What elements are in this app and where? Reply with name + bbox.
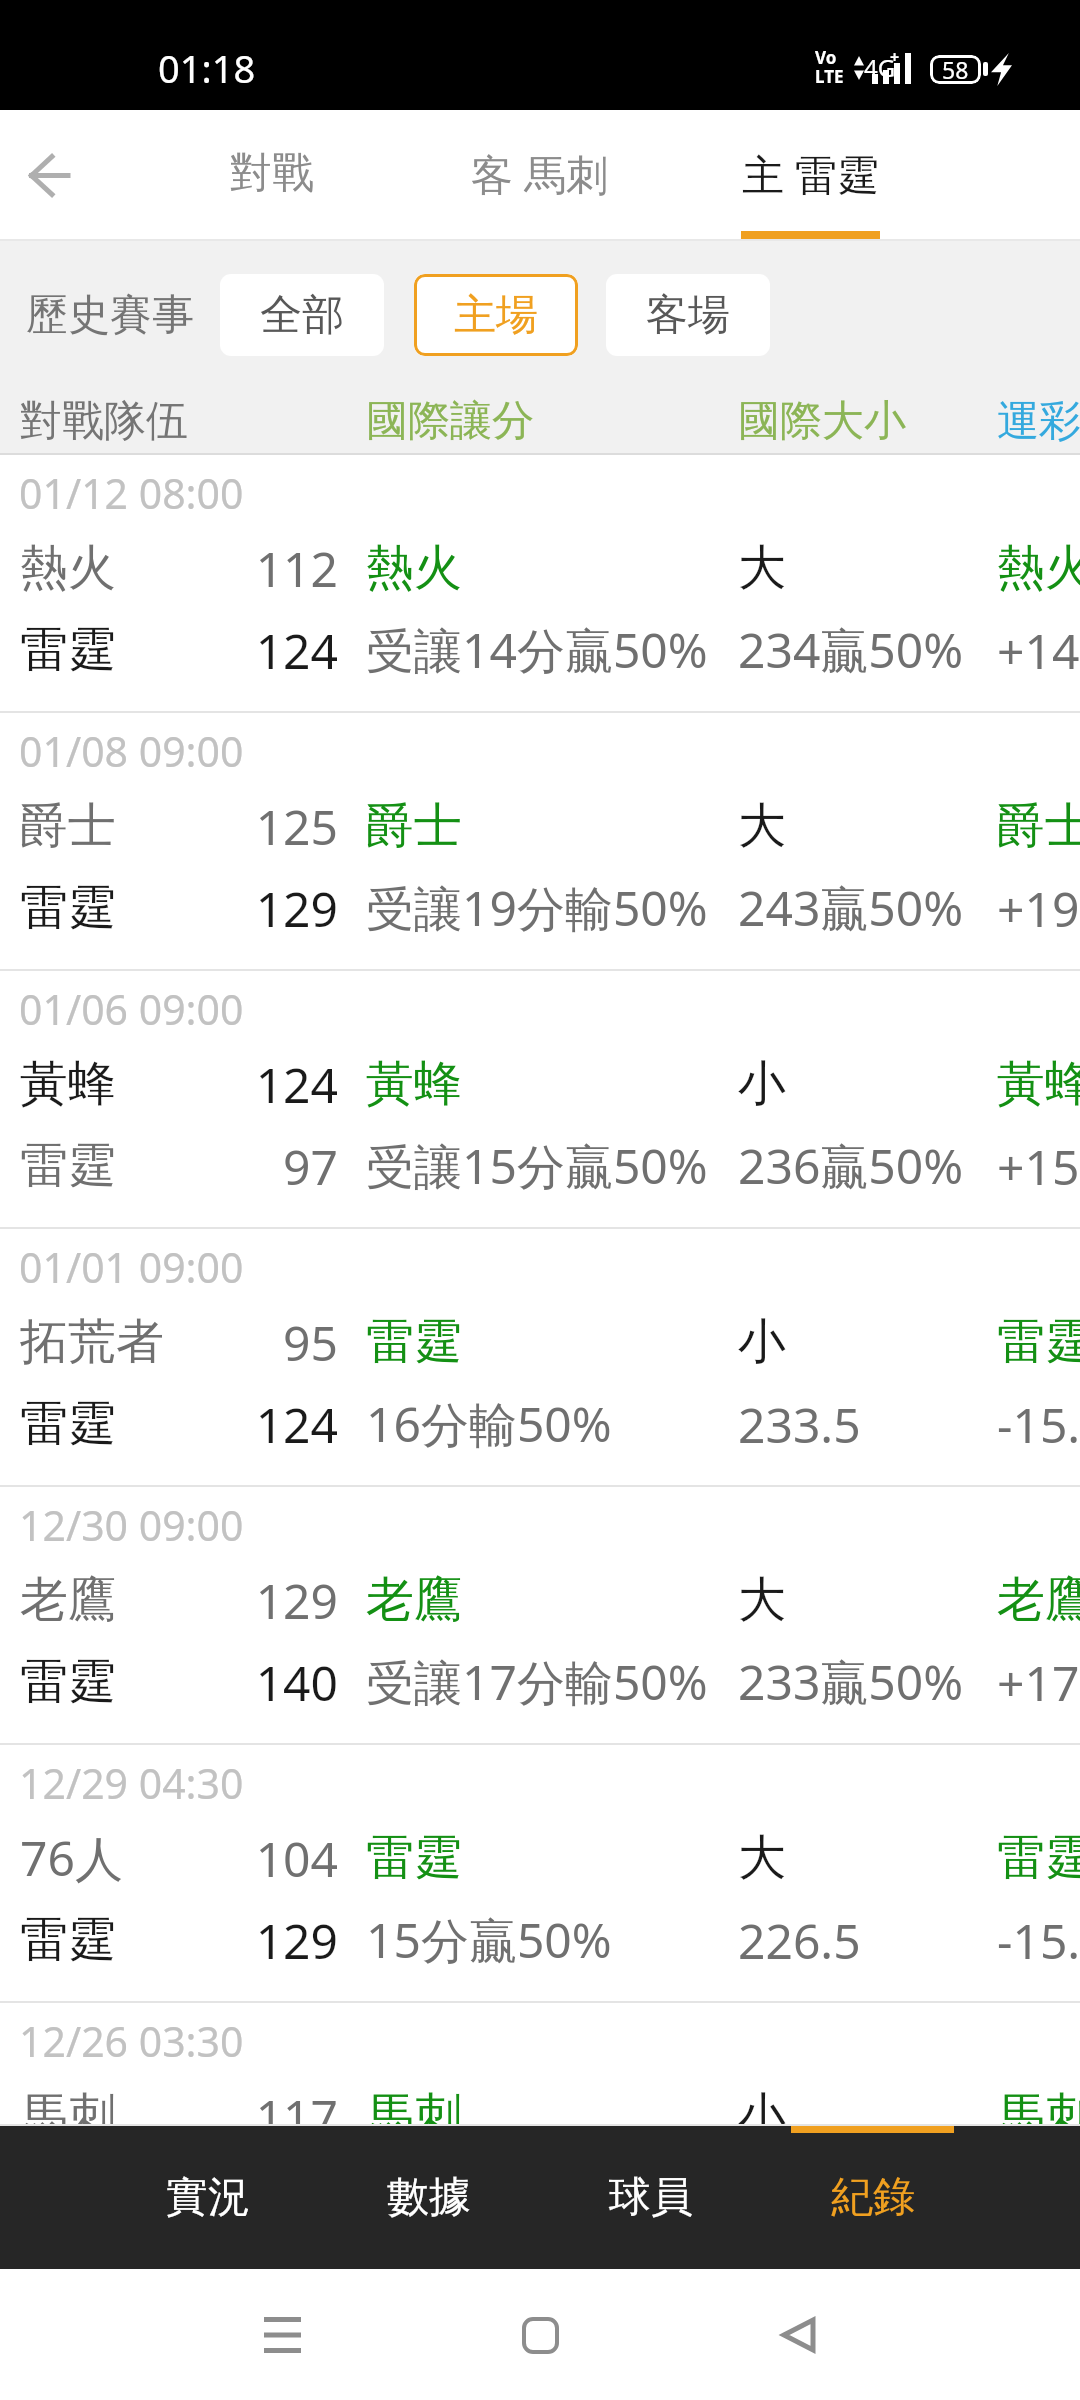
staticText: 雷霆 bbox=[20, 1136, 116, 1196]
staticText: 老鷹 bbox=[366, 1570, 462, 1630]
button[interactable]: 球員 bbox=[540, 2126, 761, 2269]
staticText: +14.5 bbox=[997, 618, 1080, 683]
button[interactable]: 客 馬刺 bbox=[424, 110, 654, 239]
button[interactable]: 01/08 09:00 bbox=[0, 713, 1080, 971]
staticText: 01:18 bbox=[158, 42, 256, 94]
staticText: 熱火 bbox=[997, 538, 1080, 598]
staticText: 大 bbox=[738, 1570, 786, 1630]
button[interactable]: 01/06 09:00 bbox=[0, 971, 1080, 1229]
staticText: 小 bbox=[738, 1312, 786, 1372]
button[interactable]: 主場 bbox=[414, 274, 578, 356]
staticText: 受讓14分贏50% bbox=[366, 617, 708, 683]
staticText: 雷霆 bbox=[20, 620, 116, 680]
staticText: 運彩 bbox=[997, 395, 1080, 448]
staticText: 76人 bbox=[20, 1825, 123, 1891]
staticText: 熱火 bbox=[20, 538, 116, 598]
staticText: 58 bbox=[942, 55, 969, 83]
staticText: 雷霆 bbox=[20, 1394, 116, 1454]
staticText: 104 bbox=[0, 1826, 338, 1891]
staticText: 16分輸50% bbox=[366, 1391, 612, 1457]
staticText: 124 bbox=[0, 1392, 338, 1457]
staticText: 老鷹 bbox=[20, 1570, 116, 1630]
staticText: 客 馬刺 bbox=[471, 145, 608, 202]
staticText: 12/29 04:30 bbox=[19, 1755, 244, 1811]
button[interactable]: Back bbox=[738, 2275, 858, 2395]
button[interactable]: 01/12 08:00 bbox=[0, 455, 1080, 713]
button[interactable]: Back bbox=[1, 127, 97, 223]
button[interactable]: 12/30 09:00 bbox=[0, 1487, 1080, 1745]
staticText: 236贏50% bbox=[738, 1133, 964, 1199]
staticText: 對戰隊伍 bbox=[20, 395, 188, 448]
staticText: 國際大小 bbox=[738, 395, 906, 448]
staticText: 12/30 09:00 bbox=[19, 1497, 244, 1553]
button[interactable]: 紀錄 bbox=[762, 2126, 983, 2269]
staticText: 客場 bbox=[646, 289, 730, 342]
staticText: 雷霆 bbox=[366, 1828, 462, 1888]
staticText: 雷霆 bbox=[20, 1652, 116, 1712]
staticText: +15.5 bbox=[997, 1134, 1080, 1199]
staticText: 球員 bbox=[609, 2171, 693, 2224]
staticText: 馬刺 bbox=[20, 2086, 116, 2126]
staticText: 爵士 bbox=[20, 796, 116, 856]
staticText: 爵士 bbox=[997, 796, 1080, 856]
staticText: 233贏50% bbox=[738, 1649, 964, 1715]
staticText: 雷霆 bbox=[20, 878, 116, 938]
staticText: 243贏50% bbox=[738, 875, 964, 941]
staticText: -15.5 bbox=[997, 1908, 1080, 1973]
staticText: 12/26 03:30 bbox=[19, 2013, 244, 2069]
staticText: 01/06 09:00 bbox=[19, 981, 244, 1037]
button[interactable]: Home bbox=[480, 2275, 600, 2395]
staticText: 129 bbox=[0, 876, 338, 941]
staticText: 112 bbox=[0, 536, 338, 601]
staticText: 對戰 bbox=[230, 147, 314, 200]
staticText: 15分贏50% bbox=[366, 1907, 612, 1973]
staticText: 全部 bbox=[260, 289, 344, 342]
staticText: 馬刺 bbox=[997, 2086, 1080, 2126]
staticText: + bbox=[890, 46, 900, 68]
staticText: 234贏50% bbox=[738, 617, 964, 683]
staticText: 雷霆 bbox=[997, 1828, 1080, 1888]
staticText: 01/08 09:00 bbox=[19, 723, 244, 779]
staticText: 226.5 bbox=[738, 1908, 861, 1973]
staticText: 數據 bbox=[387, 2171, 471, 2224]
button[interactable]: 對戰 bbox=[157, 110, 387, 239]
staticText: +17.5 bbox=[997, 1650, 1080, 1715]
button[interactable]: 12/29 04:30 bbox=[0, 1745, 1080, 2003]
staticText: 小 bbox=[738, 1054, 786, 1114]
staticText: 124 bbox=[0, 1052, 338, 1117]
staticText: 233.5 bbox=[738, 1392, 861, 1457]
staticText: 01/12 08:00 bbox=[19, 465, 244, 521]
staticText: 4G bbox=[864, 51, 896, 84]
staticText: 大 bbox=[738, 538, 786, 598]
button[interactable]: 數據 bbox=[318, 2126, 539, 2269]
staticText: 黃蜂 bbox=[366, 1054, 462, 1114]
staticText: 馬刺 bbox=[366, 2086, 462, 2126]
staticText: 雷霆 bbox=[997, 1312, 1080, 1372]
staticText: 小 bbox=[738, 2086, 786, 2126]
button[interactable]: Menu bbox=[222, 2275, 342, 2395]
staticText: 受讓15分贏50% bbox=[366, 1133, 708, 1199]
staticText: 黃蜂 bbox=[997, 1054, 1080, 1114]
staticText: 140 bbox=[0, 1650, 338, 1715]
staticText: 實況 bbox=[166, 2171, 250, 2224]
staticText: 歷史賽事 bbox=[26, 289, 194, 342]
staticText: 01/01 09:00 bbox=[19, 1239, 244, 1295]
staticText: 129 bbox=[0, 1568, 338, 1633]
staticText: 大 bbox=[738, 796, 786, 856]
staticText: 雷霆 bbox=[366, 1312, 462, 1372]
button[interactable]: 12/26 03:30 bbox=[0, 2003, 1080, 2126]
staticText: 124 bbox=[0, 618, 338, 683]
button[interactable]: 主 雷霆 bbox=[695, 110, 925, 239]
button[interactable]: 實況 bbox=[97, 2126, 318, 2269]
button[interactable]: 客場 bbox=[606, 274, 770, 356]
staticText: 受讓19分輸50% bbox=[366, 875, 708, 941]
button[interactable]: 01/01 09:00 bbox=[0, 1229, 1080, 1487]
staticText: 主場 bbox=[454, 289, 538, 342]
button[interactable]: 全部 bbox=[220, 274, 384, 356]
staticText: 拓荒者 bbox=[20, 1312, 164, 1372]
staticText: 紀錄 bbox=[831, 2171, 915, 2224]
staticText: 國際讓分 bbox=[366, 395, 534, 448]
staticText: 雷霆 bbox=[20, 1910, 116, 1970]
staticText: LTE bbox=[815, 65, 844, 88]
staticText: 老鷹 bbox=[997, 1570, 1080, 1630]
